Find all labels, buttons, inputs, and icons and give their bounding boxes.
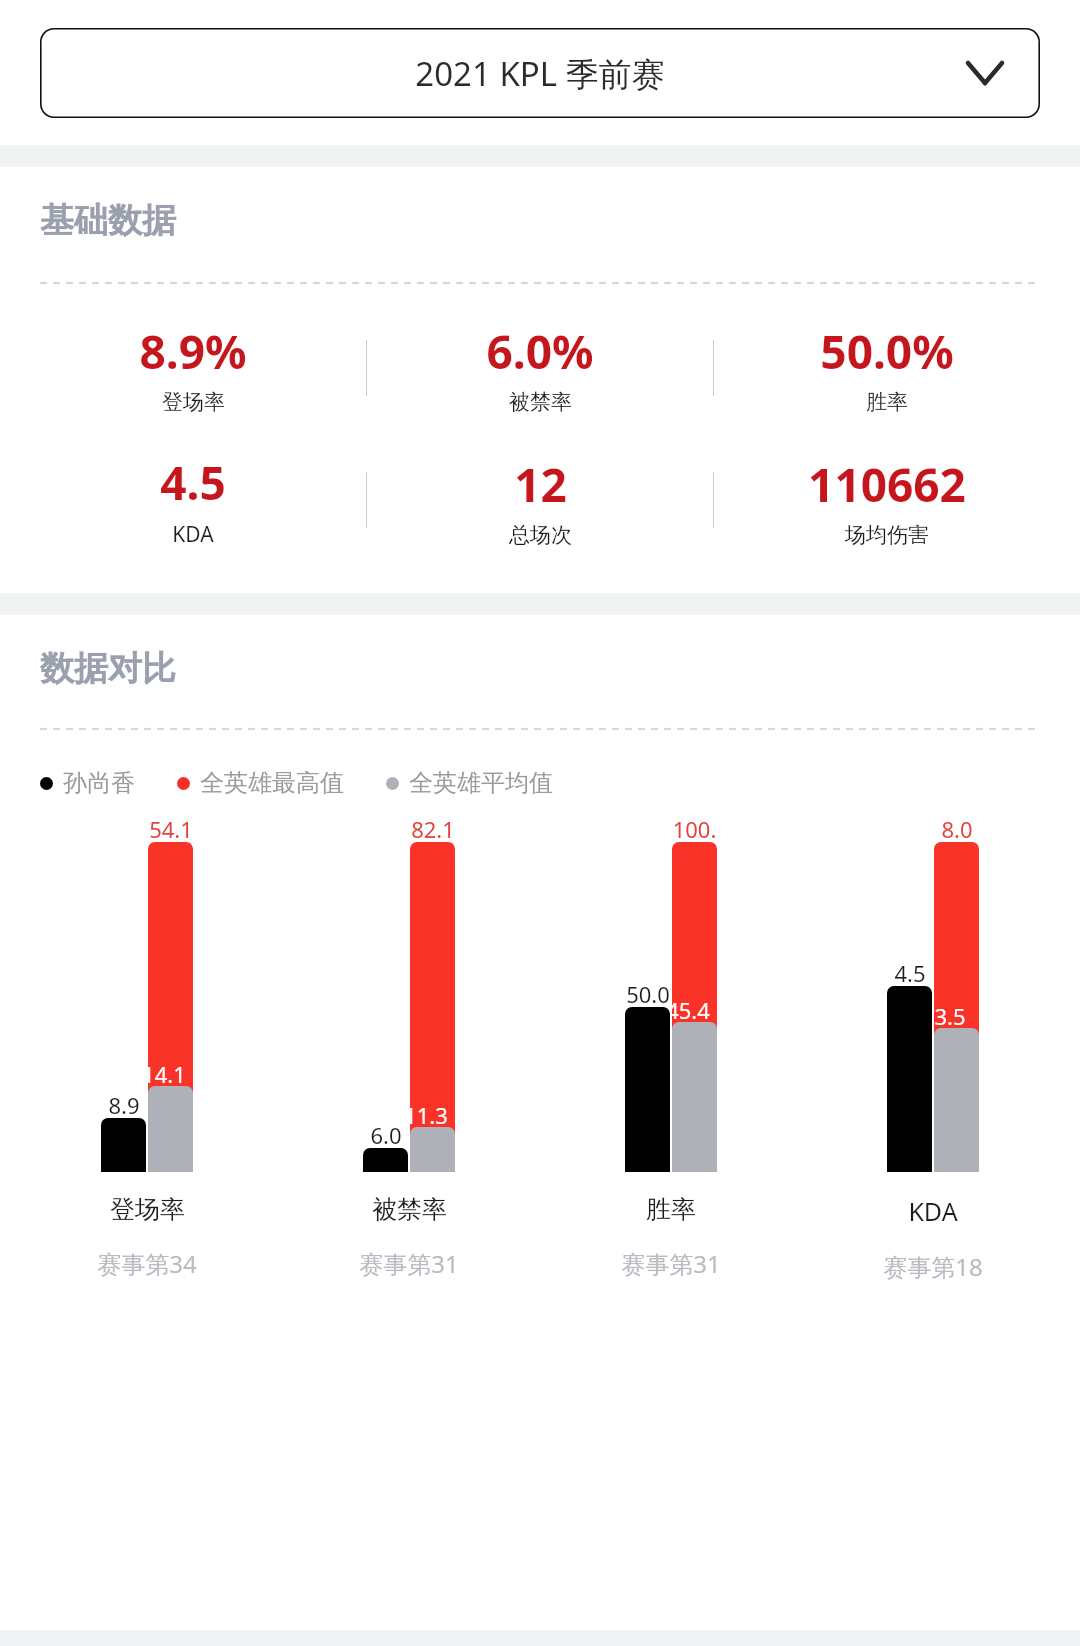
staticText: 6.0% — [486, 320, 594, 383]
staticText: 6.0 — [370, 1120, 402, 1146]
staticText: 总场次 — [509, 522, 572, 548]
staticText: 8.0 — [941, 814, 973, 840]
button[interactable]: 8.9% — [20, 320, 366, 415]
staticText: 场均伤害 — [845, 522, 929, 548]
staticText: 全英雄最高值 — [200, 768, 344, 798]
staticText: 数据对比 — [40, 647, 176, 690]
staticText: 胜率 — [866, 389, 908, 415]
button[interactable]: 全英雄平均值 — [386, 768, 553, 798]
staticText: 82.1 — [411, 814, 455, 840]
staticText: 2021 KPL 季前赛 — [415, 51, 665, 96]
staticText: 赛事第34 — [97, 1247, 197, 1280]
button[interactable]: 孙尚香 — [40, 768, 135, 798]
staticText: 全英雄平均值 — [409, 768, 553, 798]
button[interactable]: 12 — [367, 453, 713, 548]
staticText: 45.4 — [666, 995, 710, 1021]
staticText: 登场率 — [162, 389, 225, 415]
button[interactable]: 2021 KPL 季前赛 — [40, 28, 1040, 118]
staticText: 11.3 — [404, 1100, 448, 1126]
staticText: 8.9 — [108, 1090, 140, 1116]
staticText: 胜率 — [646, 1194, 696, 1225]
staticText: KDA — [908, 1194, 958, 1228]
staticText: 4.5 — [160, 451, 226, 514]
staticText: 14.1 — [142, 1059, 186, 1085]
staticText: 被禁率 — [372, 1194, 447, 1225]
staticText: 基础数据 — [40, 199, 176, 242]
staticText: 8.9% — [139, 320, 247, 383]
staticText: 50.0% — [820, 320, 954, 383]
staticText: 被禁率 — [509, 389, 572, 415]
staticText: 孙尚香 — [63, 768, 135, 798]
button[interactable]: 全英雄最高值 — [177, 768, 344, 798]
button[interactable]: 8.0 — [802, 842, 1064, 1283]
button[interactable]: 54.1 — [16, 842, 278, 1280]
staticText: 110662 — [808, 453, 966, 516]
button[interactable]: 50.0% — [714, 320, 1060, 415]
staticText: KDA — [172, 520, 214, 549]
staticText: 赛事第18 — [883, 1250, 983, 1283]
button[interactable]: 110662 — [714, 453, 1060, 548]
staticText: 54.1 — [149, 814, 193, 840]
button[interactable]: 82.1 — [278, 842, 540, 1280]
button[interactable]: 6.0% — [367, 320, 713, 415]
staticText: 赛事第31 — [621, 1247, 721, 1280]
button[interactable]: 100.0 — [540, 842, 802, 1280]
staticText: 100.0 — [672, 814, 717, 840]
button[interactable]: Expand season selector — [964, 52, 1006, 94]
staticText: 登场率 — [110, 1194, 185, 1225]
staticText: 4.5 — [894, 958, 926, 984]
staticText: 赛事第31 — [359, 1247, 459, 1280]
staticText: 3.5 — [934, 1001, 966, 1027]
button[interactable]: 4.5 — [20, 451, 366, 549]
staticText: 50.0 — [626, 979, 670, 1005]
staticText: 12 — [514, 453, 567, 516]
